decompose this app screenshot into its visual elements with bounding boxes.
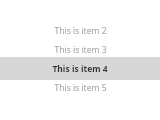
- button[interactable]: This is item 3: [0, 40, 160, 59]
- staticText: This is item 2: [54, 25, 107, 37]
- button[interactable]: This is item 5: [0, 78, 160, 97]
- staticText: This is item 3: [54, 44, 107, 56]
- button[interactable]: This is item 4: [0, 57, 160, 80]
- button[interactable]: This is item 2: [0, 21, 160, 40]
- staticText: This is item 5: [54, 82, 107, 94]
- staticText: This is item 4: [52, 63, 108, 75]
